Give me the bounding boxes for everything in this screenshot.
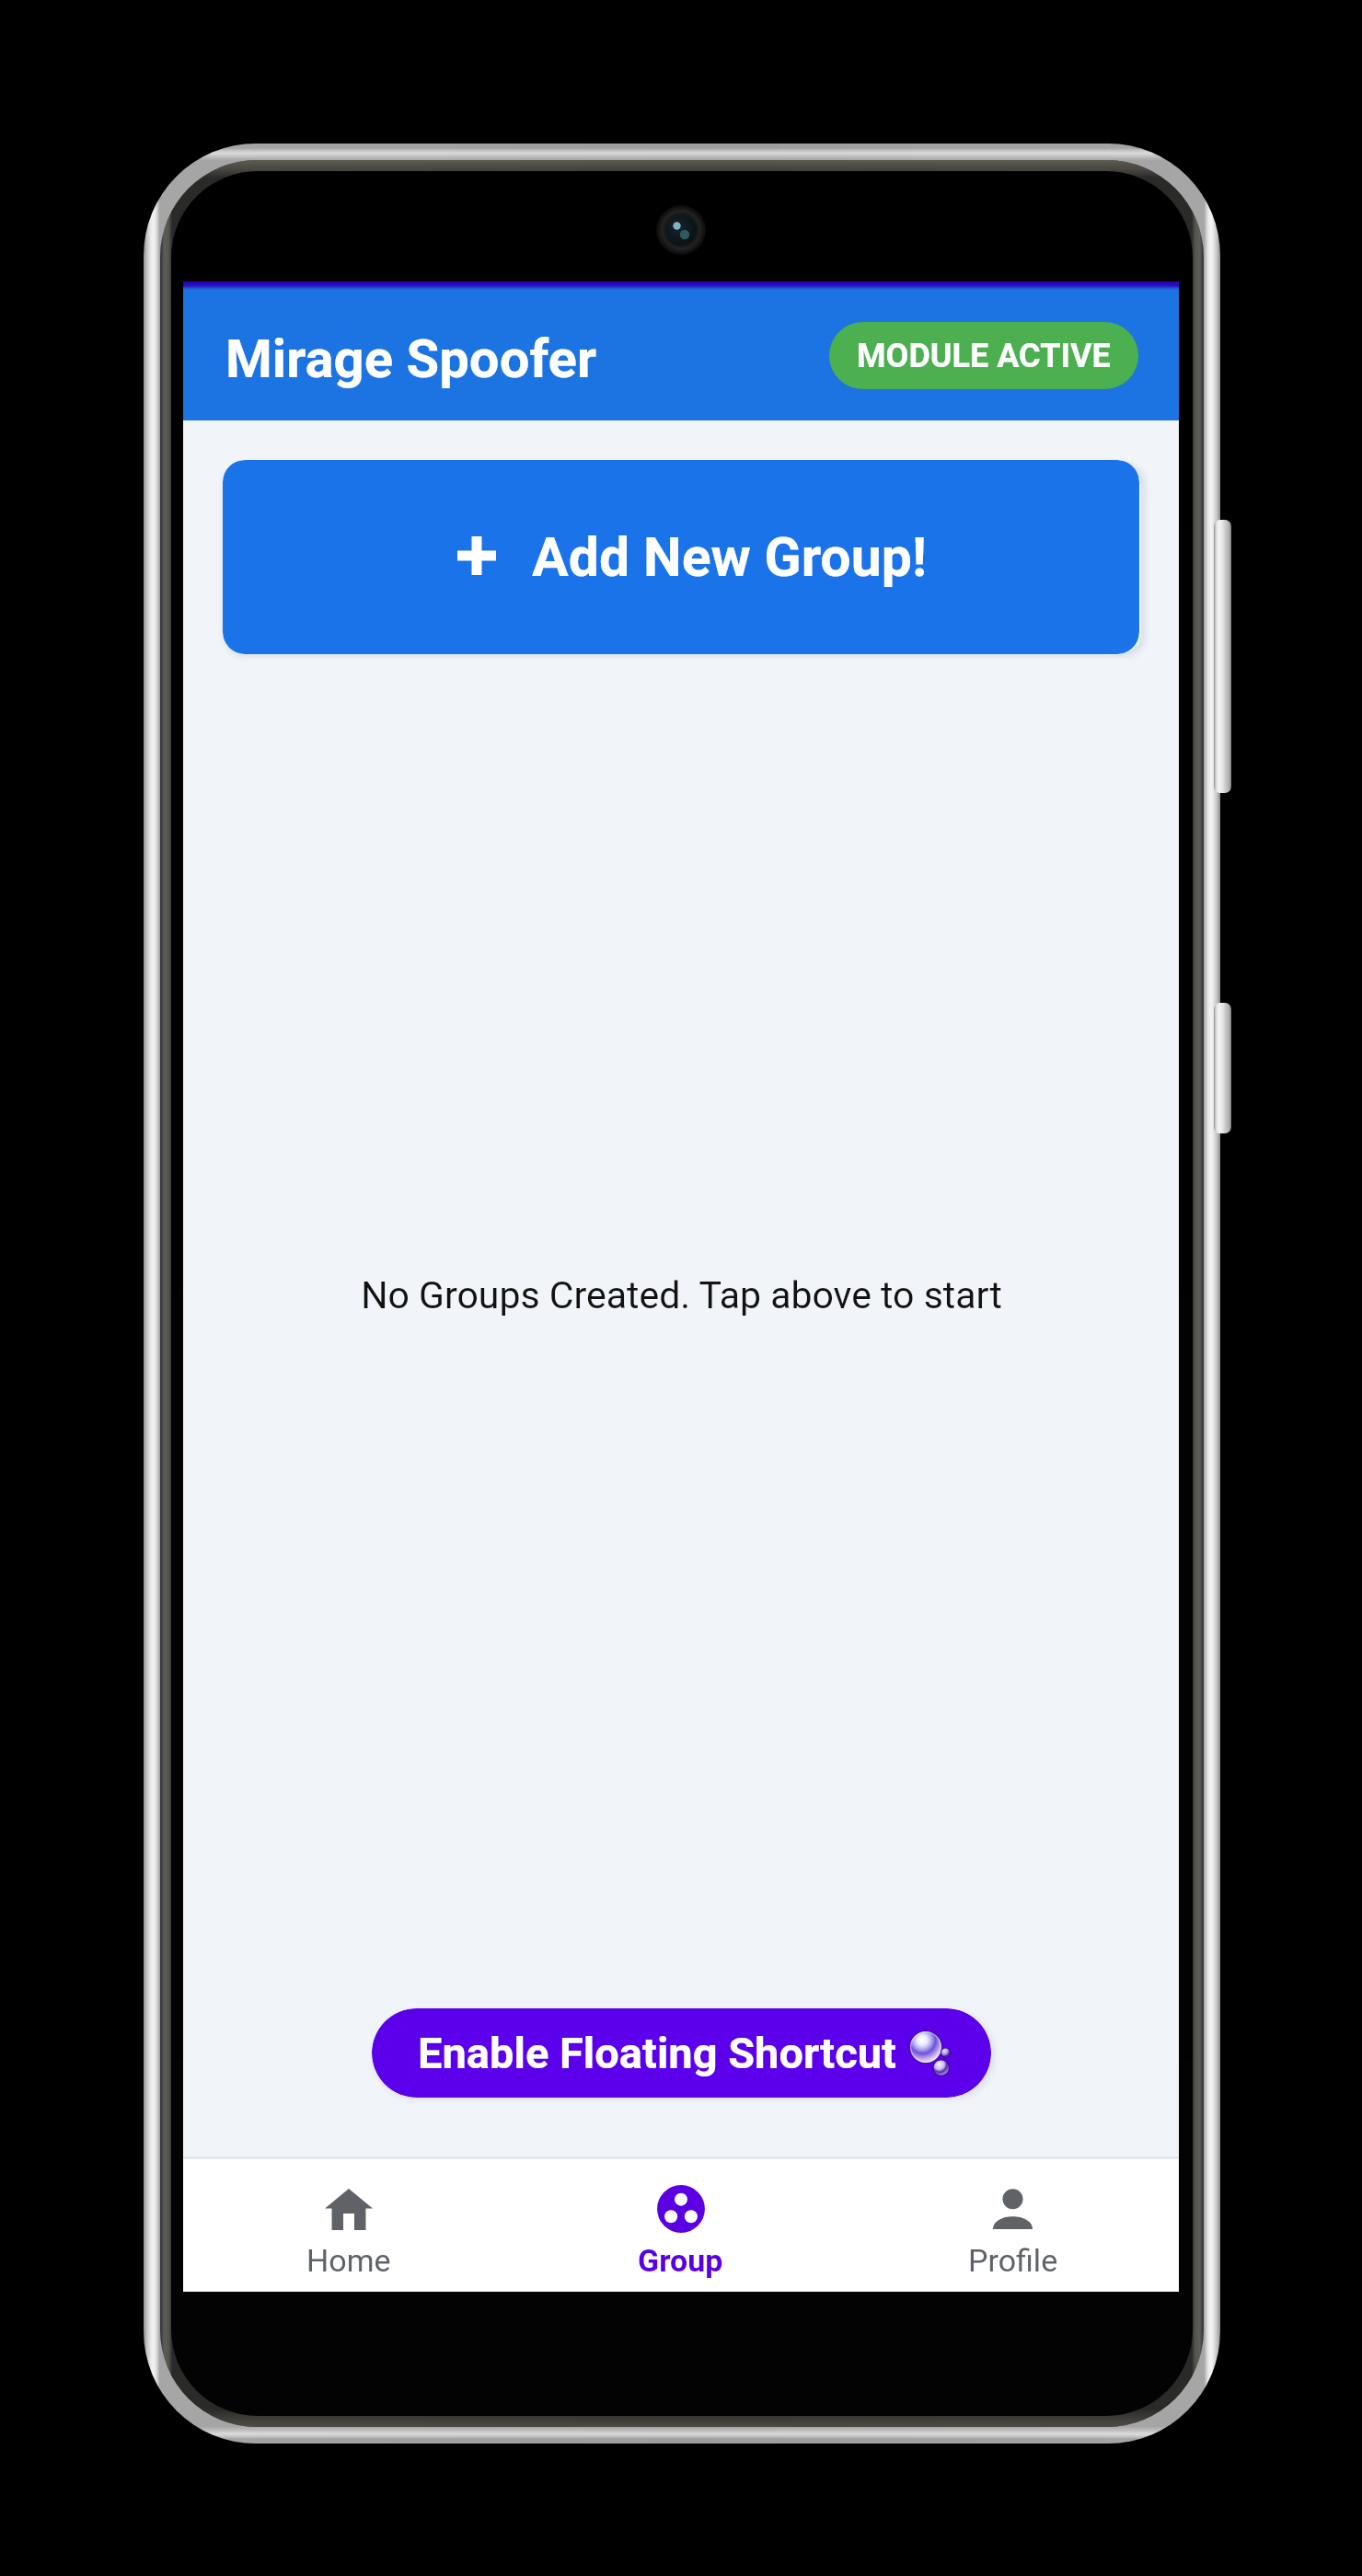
staticText: Add New Group! — [532, 525, 927, 589]
button[interactable]: Group — [514, 2159, 847, 2292]
staticText: No Groups Created. Tap above to start — [361, 1273, 1002, 1317]
button[interactable]: Enable Floating Shortcut — [372, 2008, 991, 2098]
staticText: MODULE ACTIVE — [857, 337, 1111, 375]
staticText: Group — [638, 2242, 723, 2279]
staticText: Profile — [968, 2242, 1058, 2279]
staticText: Mirage Spoofer — [225, 328, 597, 390]
button[interactable]: MODULE ACTIVE — [829, 322, 1138, 389]
staticText: Home — [306, 2242, 391, 2279]
button[interactable]: Volume — [1214, 520, 1231, 793]
button[interactable]: Add New Group! — [223, 460, 1139, 654]
button[interactable]: Power — [1214, 1003, 1231, 1133]
staticText: Enable Floating Shortcut — [418, 2028, 896, 2078]
button[interactable]: Profile — [847, 2159, 1179, 2292]
button[interactable]: Home — [183, 2159, 514, 2292]
